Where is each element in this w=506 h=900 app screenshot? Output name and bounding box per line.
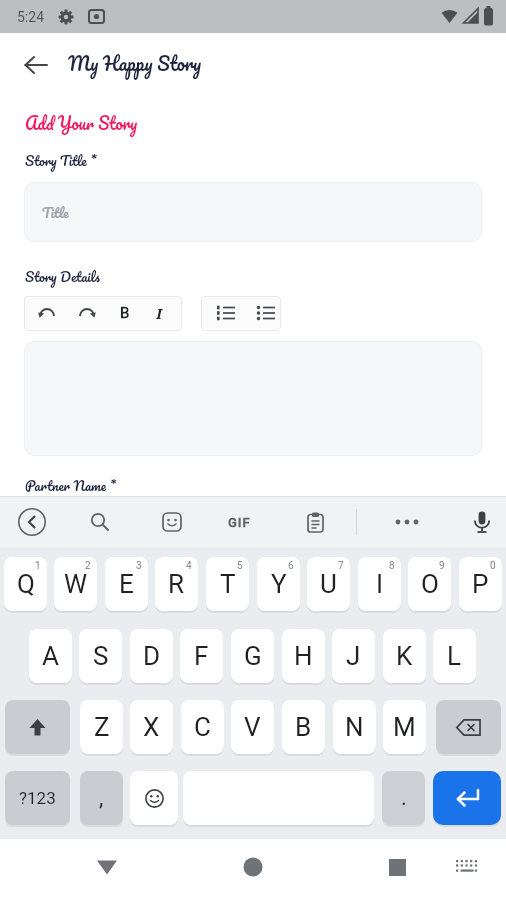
staticText: , [99, 785, 104, 811]
staticText: O [421, 569, 439, 599]
button[interactable]: P [459, 557, 502, 611]
staticText: M [393, 712, 416, 742]
button[interactable]: Y [257, 557, 300, 611]
button[interactable]: V [231, 700, 274, 754]
button[interactable] [73, 300, 99, 326]
staticText: 5 [237, 560, 243, 572]
staticText: Z [94, 712, 110, 742]
staticText: W [64, 569, 88, 599]
button[interactable]: K [383, 629, 426, 683]
button[interactable] [17, 507, 47, 537]
button[interactable] [86, 508, 114, 536]
staticText: 0 [490, 560, 496, 572]
staticText: Partner Name * [25, 474, 117, 497]
button[interactable]: M [383, 700, 426, 754]
staticText: F [194, 641, 209, 671]
staticText: X [143, 712, 160, 742]
staticText: K [396, 641, 413, 671]
button[interactable]: W [54, 557, 97, 611]
button[interactable] [433, 771, 501, 825]
staticText: GIF [228, 515, 251, 530]
staticText: I [156, 303, 163, 323]
button[interactable] [301, 508, 329, 536]
button[interactable]: B [112, 300, 138, 326]
staticText: B [120, 304, 130, 322]
staticText: N [345, 712, 364, 742]
staticText: ?123 [19, 788, 56, 808]
button[interactable]: Q [4, 557, 47, 611]
staticText: Q [17, 569, 35, 599]
staticText: 3 [136, 560, 142, 572]
button[interactable] [130, 771, 178, 825]
button[interactable]: L [433, 629, 476, 683]
staticText: R [168, 569, 185, 599]
staticText: 9 [439, 560, 445, 572]
button[interactable] [14, 50, 58, 80]
staticText: Story Details [25, 265, 100, 288]
button[interactable]: . [382, 771, 425, 825]
staticText: 1 [35, 560, 41, 572]
button[interactable] [34, 300, 60, 326]
staticText: 5:24 [17, 9, 44, 25]
staticText: Story Title * [25, 149, 97, 172]
staticText: I [376, 569, 384, 599]
staticText: . [401, 785, 407, 811]
staticText: C [194, 712, 211, 742]
staticText: E [119, 569, 134, 599]
button[interactable]: C [181, 700, 224, 754]
button[interactable]: J [332, 629, 375, 683]
button[interactable]: A [29, 629, 72, 683]
button[interactable] [253, 300, 279, 326]
staticText: D [143, 641, 161, 671]
button[interactable]: S [79, 629, 122, 683]
button[interactable]: N [333, 700, 376, 754]
button[interactable]: O [408, 557, 451, 611]
button[interactable]: D [130, 629, 173, 683]
staticText: 8 [389, 560, 395, 572]
button[interactable] [24, 182, 482, 242]
staticText: Title [42, 201, 69, 224]
button[interactable]: I [146, 300, 172, 326]
button[interactable] [158, 508, 186, 536]
button[interactable]: G [231, 629, 274, 683]
button[interactable] [436, 700, 501, 754]
staticText: V [244, 712, 261, 742]
staticText: U [320, 569, 337, 599]
button[interactable]: Z [80, 700, 123, 754]
button[interactable]: E [105, 557, 148, 611]
staticText: H [294, 641, 313, 671]
staticText: L [447, 641, 462, 671]
staticText: My Happy Story [68, 48, 202, 80]
button[interactable]: I [358, 557, 401, 611]
staticText: S [93, 641, 109, 671]
button[interactable] [87, 849, 127, 885]
button[interactable] [5, 700, 70, 754]
button[interactable]: X [130, 700, 173, 754]
button[interactable]: R [155, 557, 198, 611]
button[interactable] [392, 508, 422, 536]
button[interactable]: F [180, 629, 223, 683]
button[interactable]: U [307, 557, 350, 611]
staticText: 4 [186, 560, 192, 572]
staticText: 6 [288, 560, 294, 572]
button[interactable]: , [80, 771, 123, 825]
staticText: Add Your Story [25, 109, 138, 137]
staticText: P [472, 569, 489, 599]
staticText: T [220, 569, 236, 599]
button[interactable] [233, 849, 273, 885]
staticText: Y [271, 569, 287, 599]
button[interactable] [447, 849, 487, 885]
button[interactable] [377, 849, 417, 885]
staticText: J [346, 641, 361, 671]
button[interactable] [467, 507, 497, 537]
staticText: 2 [85, 560, 91, 572]
button[interactable] [213, 300, 239, 326]
staticText: A [42, 641, 59, 671]
button[interactable]: B [282, 700, 325, 754]
button[interactable]: ?123 [5, 771, 70, 825]
staticText: G [244, 641, 262, 671]
button[interactable]: H [282, 629, 325, 683]
button[interactable]: T [206, 557, 249, 611]
